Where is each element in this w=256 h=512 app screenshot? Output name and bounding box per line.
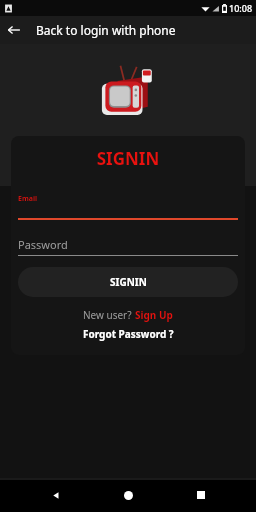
button[interactable]: Back bbox=[0, 16, 28, 44]
staticText: Password bbox=[18, 237, 68, 252]
staticText: Email bbox=[18, 194, 38, 204]
button[interactable]: Home bbox=[111, 478, 145, 512]
staticText: 10:08 bbox=[229, 2, 253, 14]
staticText: Back to login with phone bbox=[36, 22, 176, 38]
button[interactable]: Forgot Password ? bbox=[18, 327, 238, 341]
staticText: New user? bbox=[83, 308, 135, 322]
button[interactable]: Back bbox=[39, 478, 73, 512]
button[interactable]: SIGNIN bbox=[18, 267, 238, 297]
button[interactable]: Recent apps bbox=[184, 478, 218, 512]
staticText: Sign Up bbox=[135, 308, 173, 322]
staticText: SIGNIN bbox=[18, 147, 238, 170]
staticText: Forgot Password ? bbox=[83, 327, 174, 341]
staticText: SIGNIN bbox=[110, 275, 147, 289]
button[interactable]: Sign Up bbox=[135, 308, 173, 322]
